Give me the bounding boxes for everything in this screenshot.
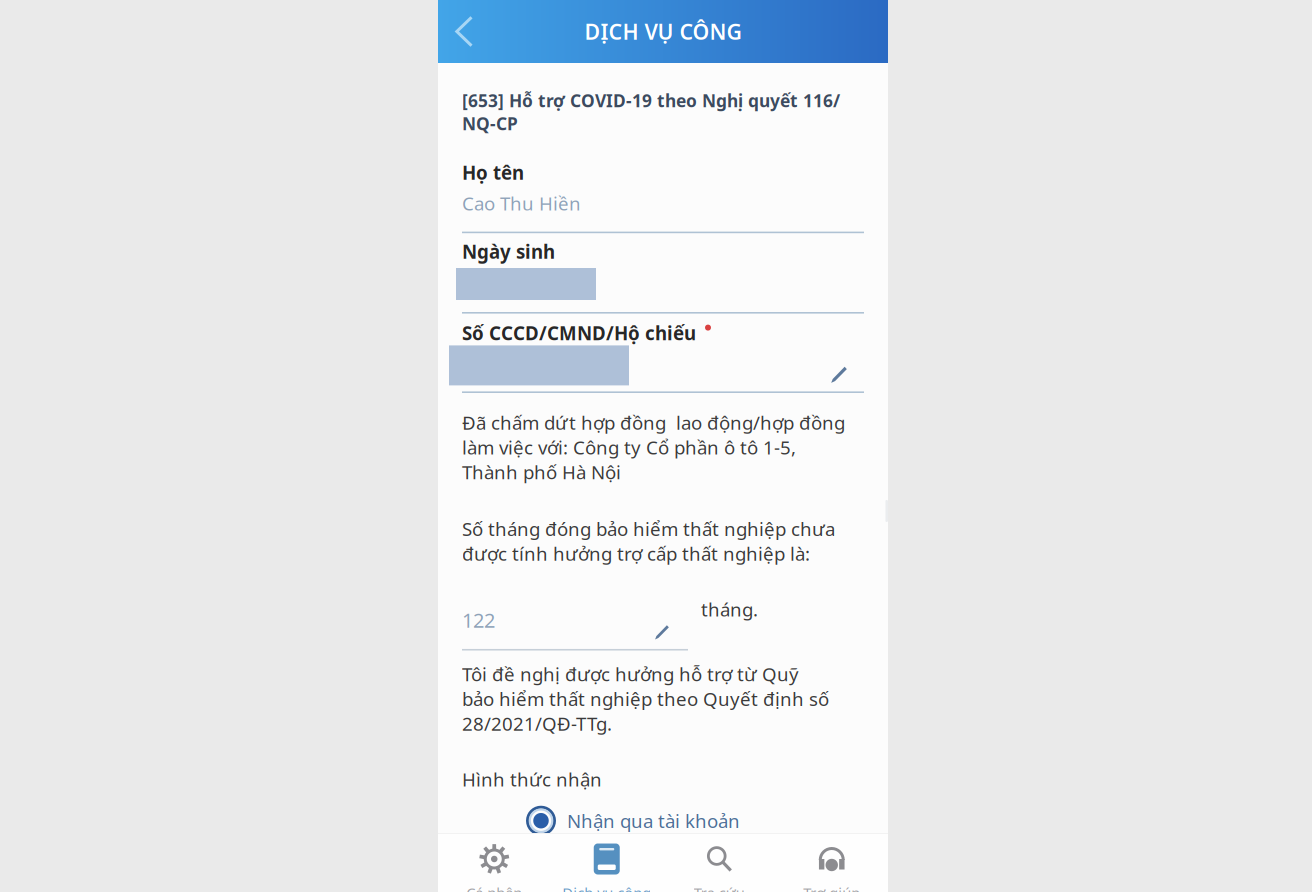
staticText: Cao Thu Hiền (462, 191, 581, 216)
button[interactable]: Cá nhân (438, 834, 550, 892)
button[interactable]: Tra cứu (663, 834, 775, 892)
button[interactable]: Dịch vụ công (550, 834, 663, 892)
staticText: Họ tên (462, 160, 524, 185)
staticText: Tôi đề nghị được hưởng hỗ trợ từ Quỹ bảo… (462, 661, 829, 736)
staticText: DỊCH VỤ CÔNG (584, 17, 741, 46)
staticText: Số CCCD/CMND/Hộ chiếu (462, 321, 696, 345)
button[interactable]: Back (438, 0, 489, 62)
staticText: [653] Hỗ trợ COVID-19 theo Nghị quyết 11… (462, 89, 840, 135)
staticText: Tra cứu (694, 883, 745, 892)
staticText: tháng. (701, 597, 758, 622)
staticText: Hình thức nhận (462, 767, 602, 792)
staticText: Ngày sinh (462, 239, 555, 264)
staticText: Dịch vụ công (562, 883, 651, 892)
staticText: Đã chấm dứt hợp đồng lao động/hợp đồng l… (462, 410, 845, 484)
button[interactable]: Trợ giúp (775, 834, 888, 892)
button[interactable]: Nhận qua tài khoản (462, 792, 740, 836)
staticText: Cá nhân (466, 883, 522, 892)
staticText: Số tháng đóng bảo hiểm thất nghiệp chưa … (462, 516, 835, 566)
staticText: Trợ giúp (803, 883, 860, 892)
staticText: Nhận qua tài khoản (567, 808, 740, 833)
staticText: 122 (462, 607, 495, 633)
